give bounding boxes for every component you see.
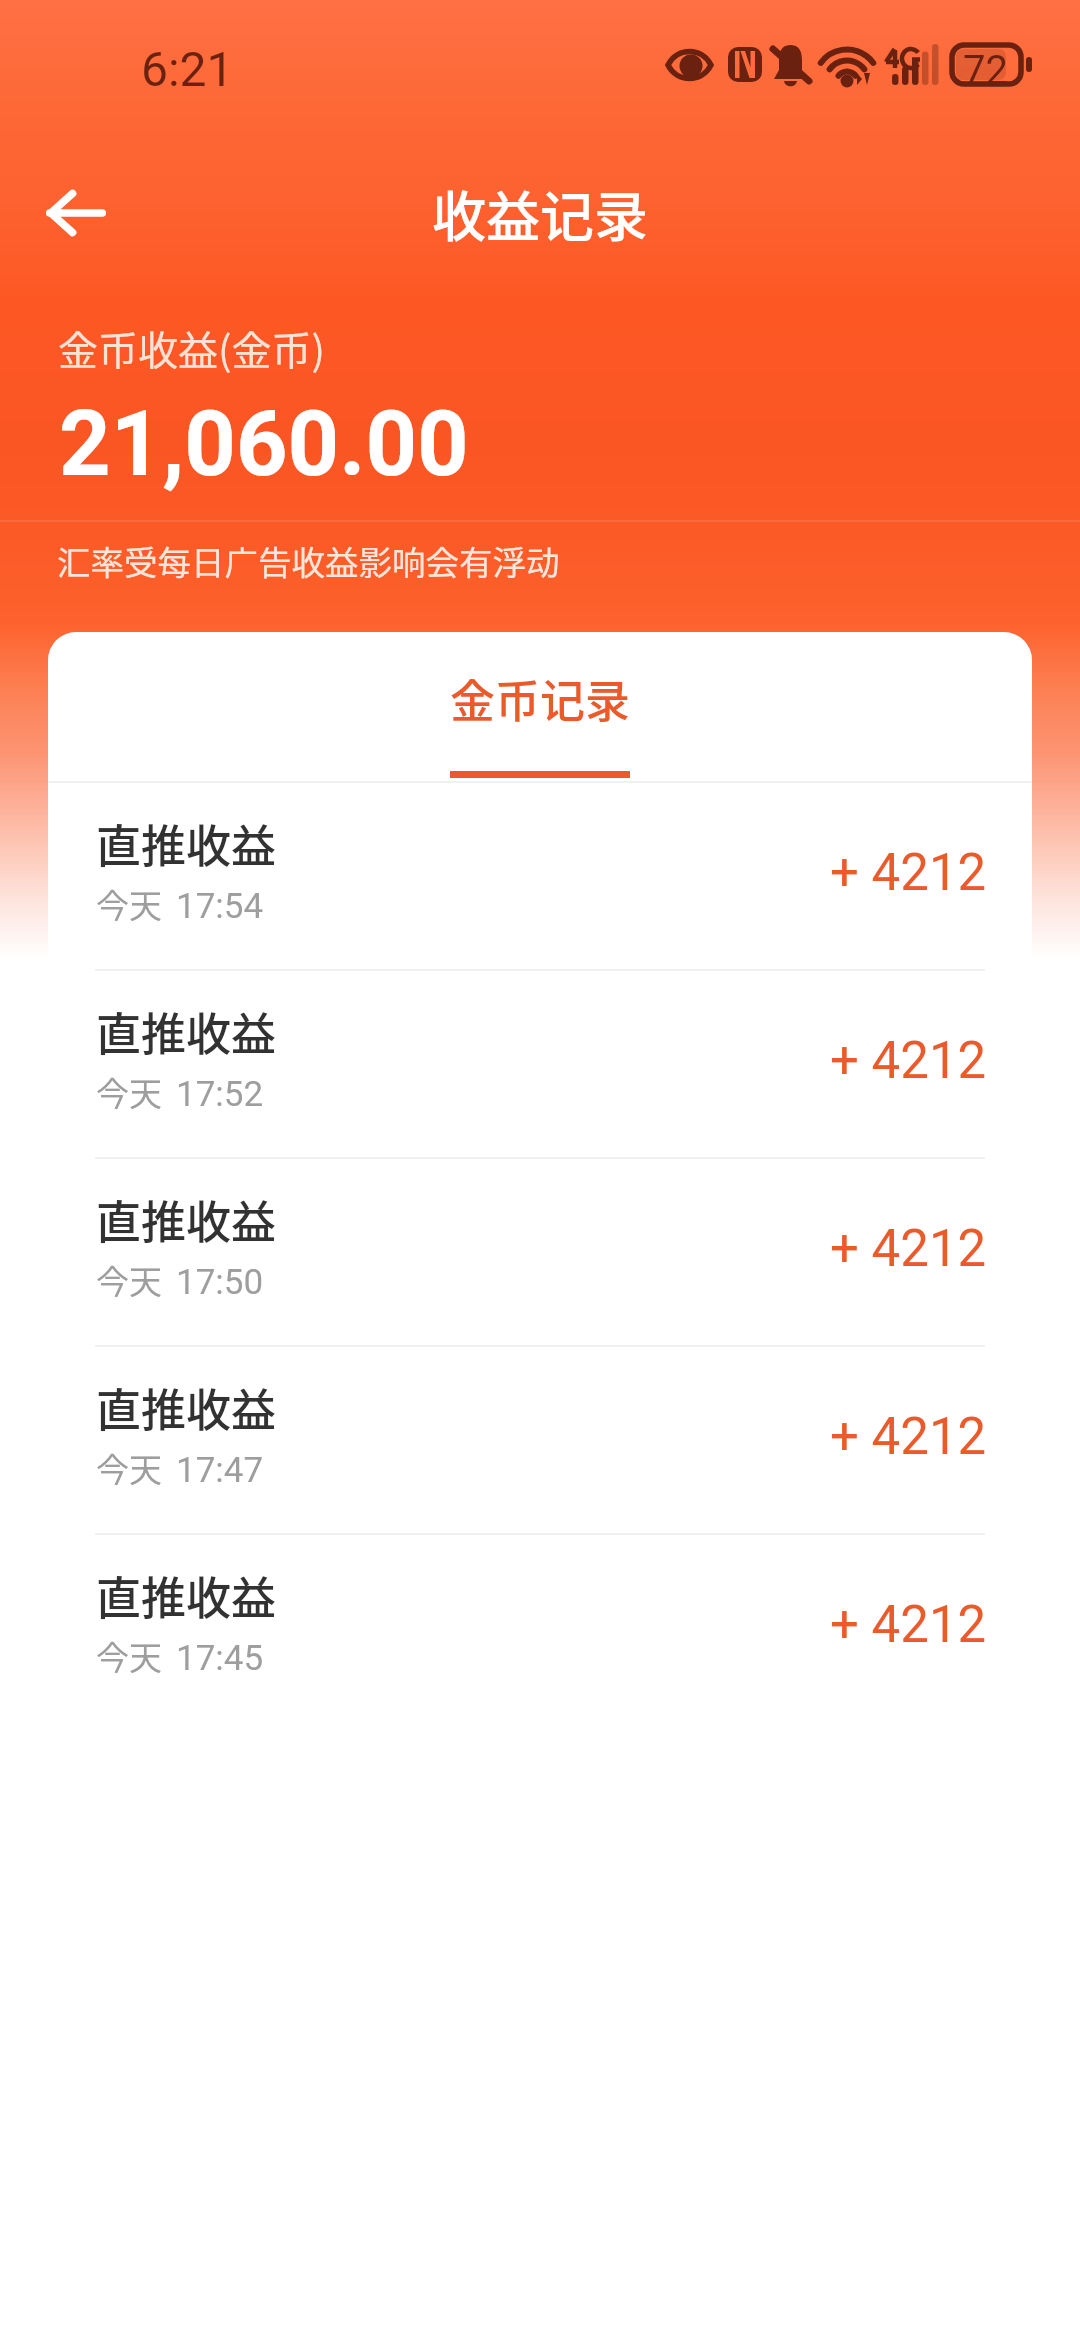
staticText: + 4212 (830, 843, 987, 903)
button[interactable]: 直推收益 (48, 1159, 1032, 1345)
staticText: 今天 (96, 1256, 162, 1304)
staticText: 17:47 (176, 1450, 264, 1491)
staticText: + 4212 (830, 1031, 987, 1091)
staticText: 今天 (96, 1444, 162, 1492)
staticText: 今天 (96, 1068, 162, 1116)
staticText: + 4212 (830, 1219, 987, 1279)
staticText: 收益记录 (432, 174, 648, 252)
staticText: 72 (963, 47, 1008, 94)
staticText: 金币收益(金币) (58, 319, 326, 377)
staticText: 汇率受每日广告收益影响会有浮动 (57, 536, 560, 585)
staticText: 直推收益 (96, 811, 277, 876)
staticText: 直推收益 (96, 1563, 277, 1628)
button[interactable]: 直推收益 (48, 783, 1032, 969)
staticText: 17:52 (176, 1074, 264, 1115)
staticText: 今天 (96, 880, 162, 928)
staticText: 6:21 (141, 41, 234, 97)
staticText: 21,060.00 (59, 392, 469, 497)
staticText: + 4212 (830, 1407, 987, 1467)
button[interactable]: 金币记录 (48, 632, 1032, 781)
staticText: 17:50 (176, 1262, 264, 1303)
staticText: 金币记录 (450, 666, 631, 731)
staticText: 17:45 (176, 1638, 264, 1679)
staticText: 今天 (96, 1632, 162, 1680)
button[interactable]: 直推收益 (48, 1535, 1032, 1722)
button[interactable]: Back (24, 161, 128, 265)
staticText: 直推收益 (96, 999, 277, 1064)
staticText: + 4212 (830, 1595, 987, 1655)
button[interactable]: 直推收益 (48, 971, 1032, 1157)
staticText: 直推收益 (96, 1187, 277, 1252)
staticText: 直推收益 (96, 1375, 277, 1440)
button[interactable]: 直推收益 (48, 1347, 1032, 1533)
staticText: 17:54 (176, 886, 264, 927)
